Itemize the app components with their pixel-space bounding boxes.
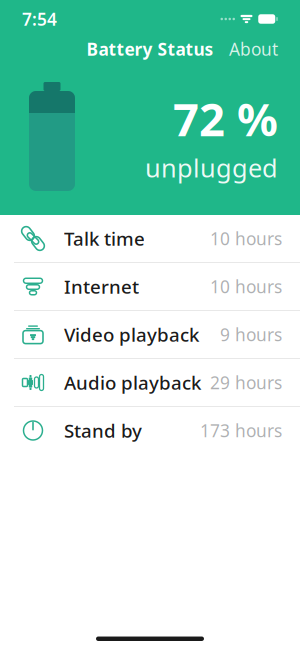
button[interactable]: Stand by: [0, 407, 300, 455]
staticText: Stand by: [64, 418, 142, 443]
staticText: Internet: [64, 274, 139, 299]
button[interactable]: Audio playback: [0, 359, 300, 407]
staticText: 29 hours: [210, 371, 282, 394]
staticText: Video playback: [64, 322, 199, 347]
staticText: 72 %: [173, 89, 278, 149]
staticText: Battery Status: [86, 37, 213, 60]
staticText: 10 hours: [210, 275, 282, 298]
staticText: 9 hours: [220, 323, 282, 346]
button[interactable]: Talk time: [0, 215, 300, 263]
button[interactable]: About: [219, 31, 288, 66]
staticText: 10 hours: [210, 227, 282, 250]
staticText: Talk time: [64, 226, 145, 251]
staticText: 7:54: [22, 7, 57, 30]
button[interactable]: Internet: [0, 263, 300, 311]
staticText: 173 hours: [200, 419, 282, 442]
button[interactable]: Video playback: [0, 311, 300, 359]
staticText: Audio playback: [64, 370, 201, 395]
staticText: About: [229, 37, 278, 60]
staticText: unplugged: [145, 151, 278, 184]
